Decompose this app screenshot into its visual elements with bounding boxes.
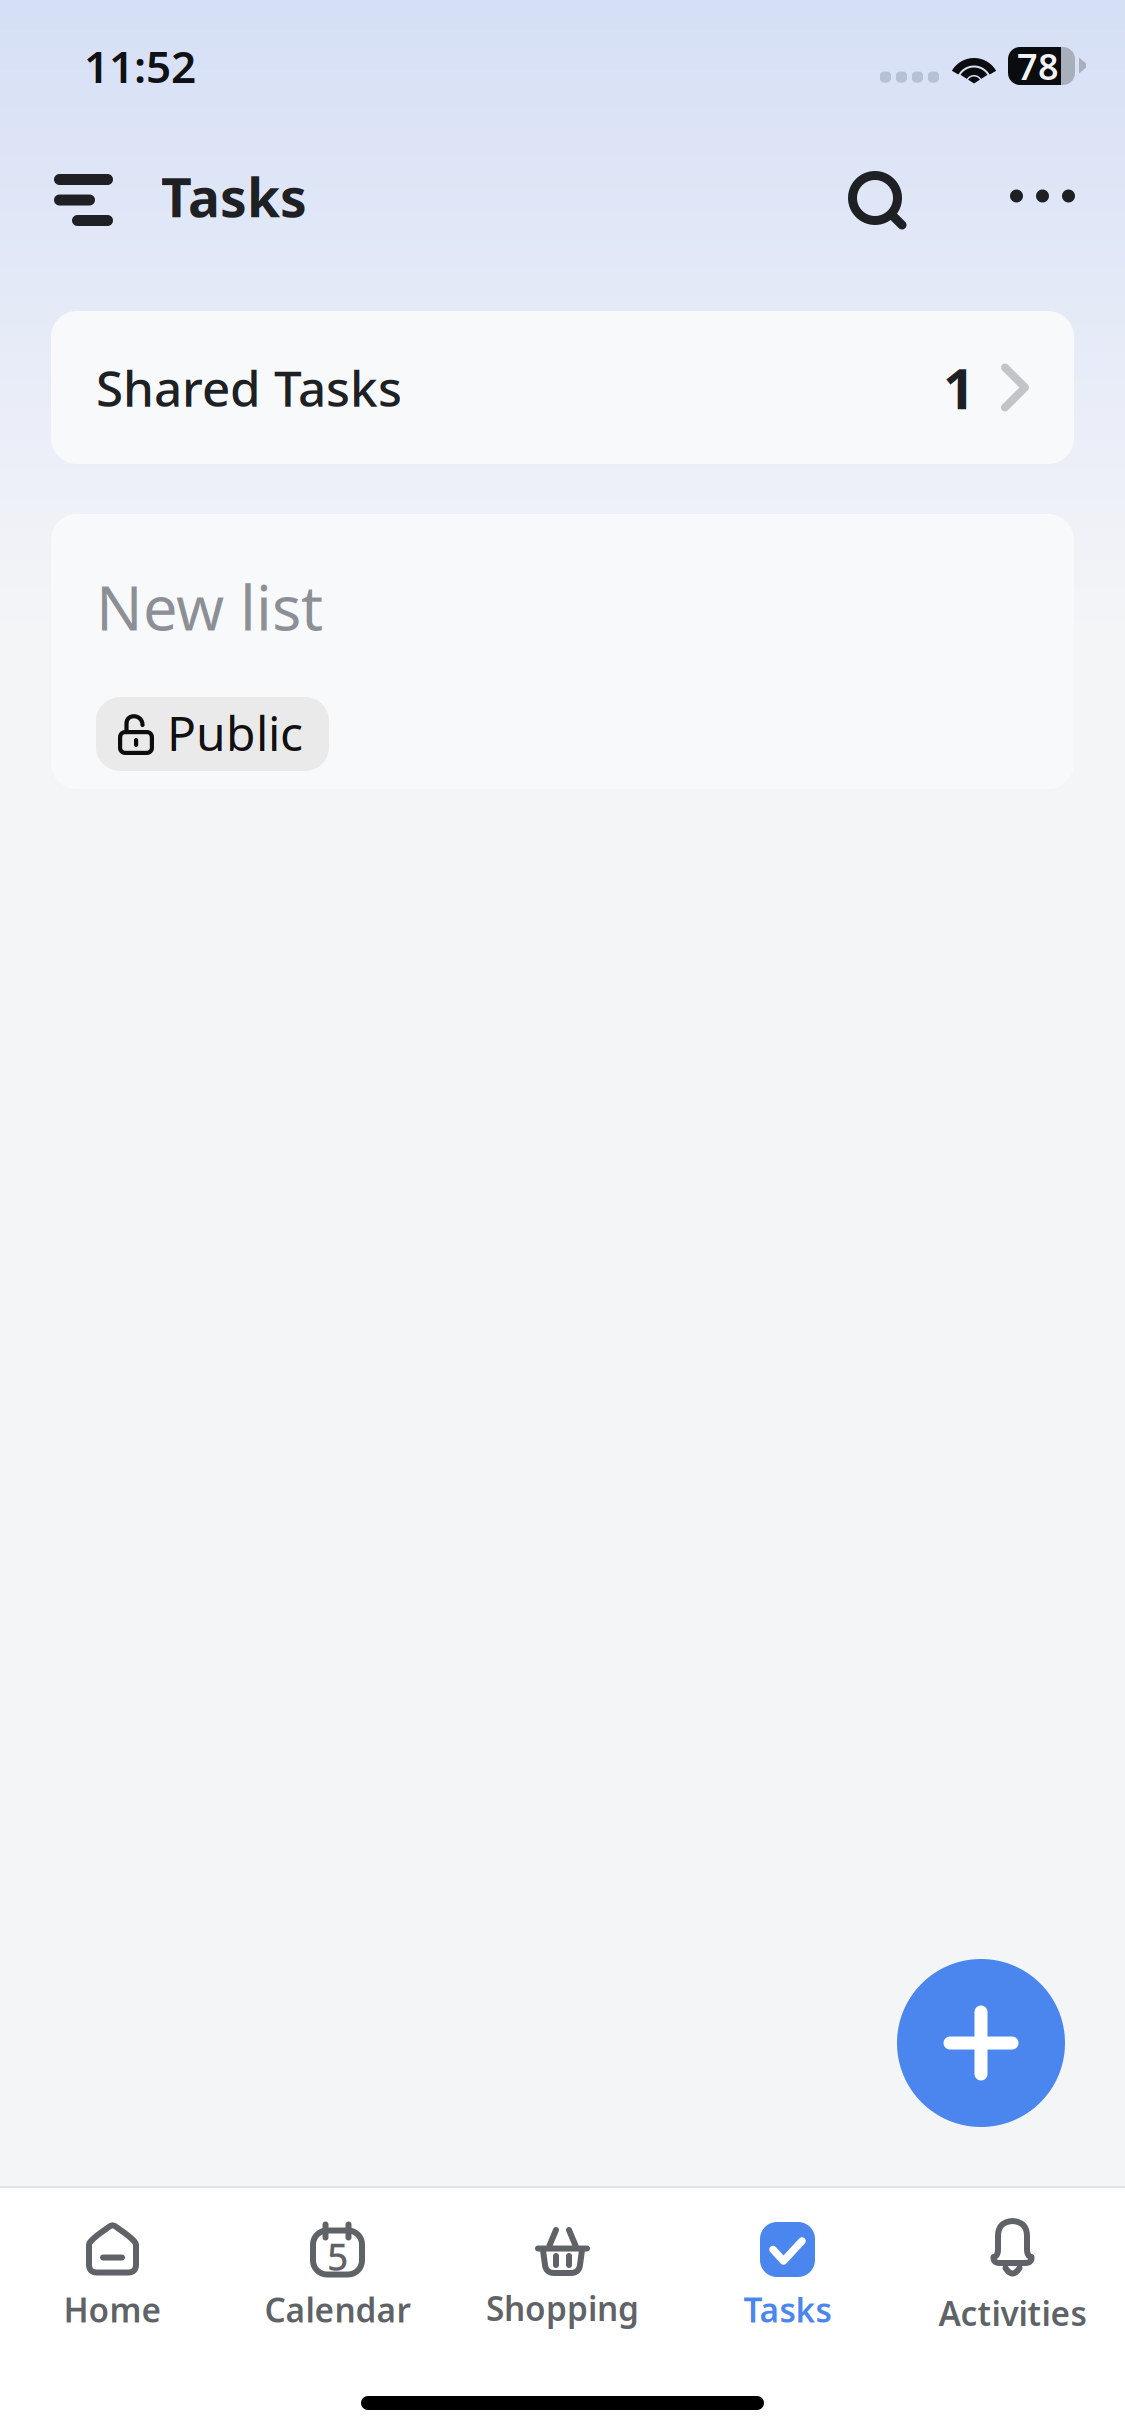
button[interactable]: Add task	[897, 1959, 1065, 2127]
button[interactable]: Public	[96, 697, 329, 771]
staticText: 11:52	[84, 37, 196, 95]
staticText: 78	[1017, 42, 1059, 90]
button[interactable]: More options	[998, 157, 1125, 242]
staticText: Activities	[938, 2291, 1086, 2335]
staticText: Shopping	[486, 2286, 639, 2330]
staticText: Tasks	[743, 2287, 831, 2332]
staticText: Tasks	[161, 161, 307, 232]
button[interactable]: Shared Tasks	[51, 311, 1074, 464]
button[interactable]: Activities	[900, 2188, 1125, 2347]
staticText: Shared Tasks	[96, 355, 402, 420]
button[interactable]: Menu	[0, 148, 135, 252]
button[interactable]: 5	[225, 2191, 450, 2344]
staticText: Public	[167, 701, 303, 764]
button[interactable]: Search	[846, 141, 998, 259]
staticText: 5	[327, 2231, 348, 2281]
button[interactable]: Tasks	[675, 2191, 900, 2344]
staticText: 1	[943, 350, 975, 425]
button[interactable]: Shopping	[450, 2193, 675, 2342]
button[interactable]: Home	[0, 2191, 225, 2344]
staticText: New list	[96, 566, 323, 647]
staticText: Home	[63, 2287, 161, 2332]
staticText: Calendar	[264, 2287, 410, 2332]
